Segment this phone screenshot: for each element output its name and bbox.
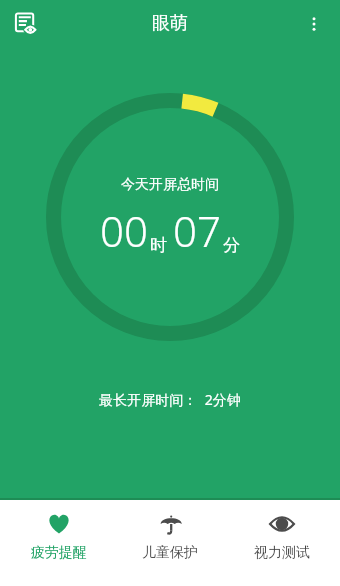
button[interactable]: 报告 [8, 6, 44, 42]
button[interactable]: 视力测试 [229, 500, 335, 562]
staticText: 疲劳提醒 [31, 544, 87, 562]
button[interactable]: 更多选项 [296, 6, 332, 42]
staticText: 时 [150, 235, 167, 256]
staticText: 儿童保护 [142, 544, 198, 562]
staticText: 分 [223, 235, 240, 256]
staticText: 视力测试 [254, 544, 310, 562]
staticText: 眼萌 [152, 12, 188, 35]
staticText: 最长开屏时间： 2分钟 [0, 390, 340, 409]
button[interactable]: 儿童保护 [117, 500, 223, 562]
staticText: 00 [100, 202, 148, 259]
button[interactable]: 疲劳提醒 [6, 500, 112, 562]
staticText: 07 [173, 202, 221, 259]
staticText: 今天开屏总时间 [121, 176, 219, 194]
